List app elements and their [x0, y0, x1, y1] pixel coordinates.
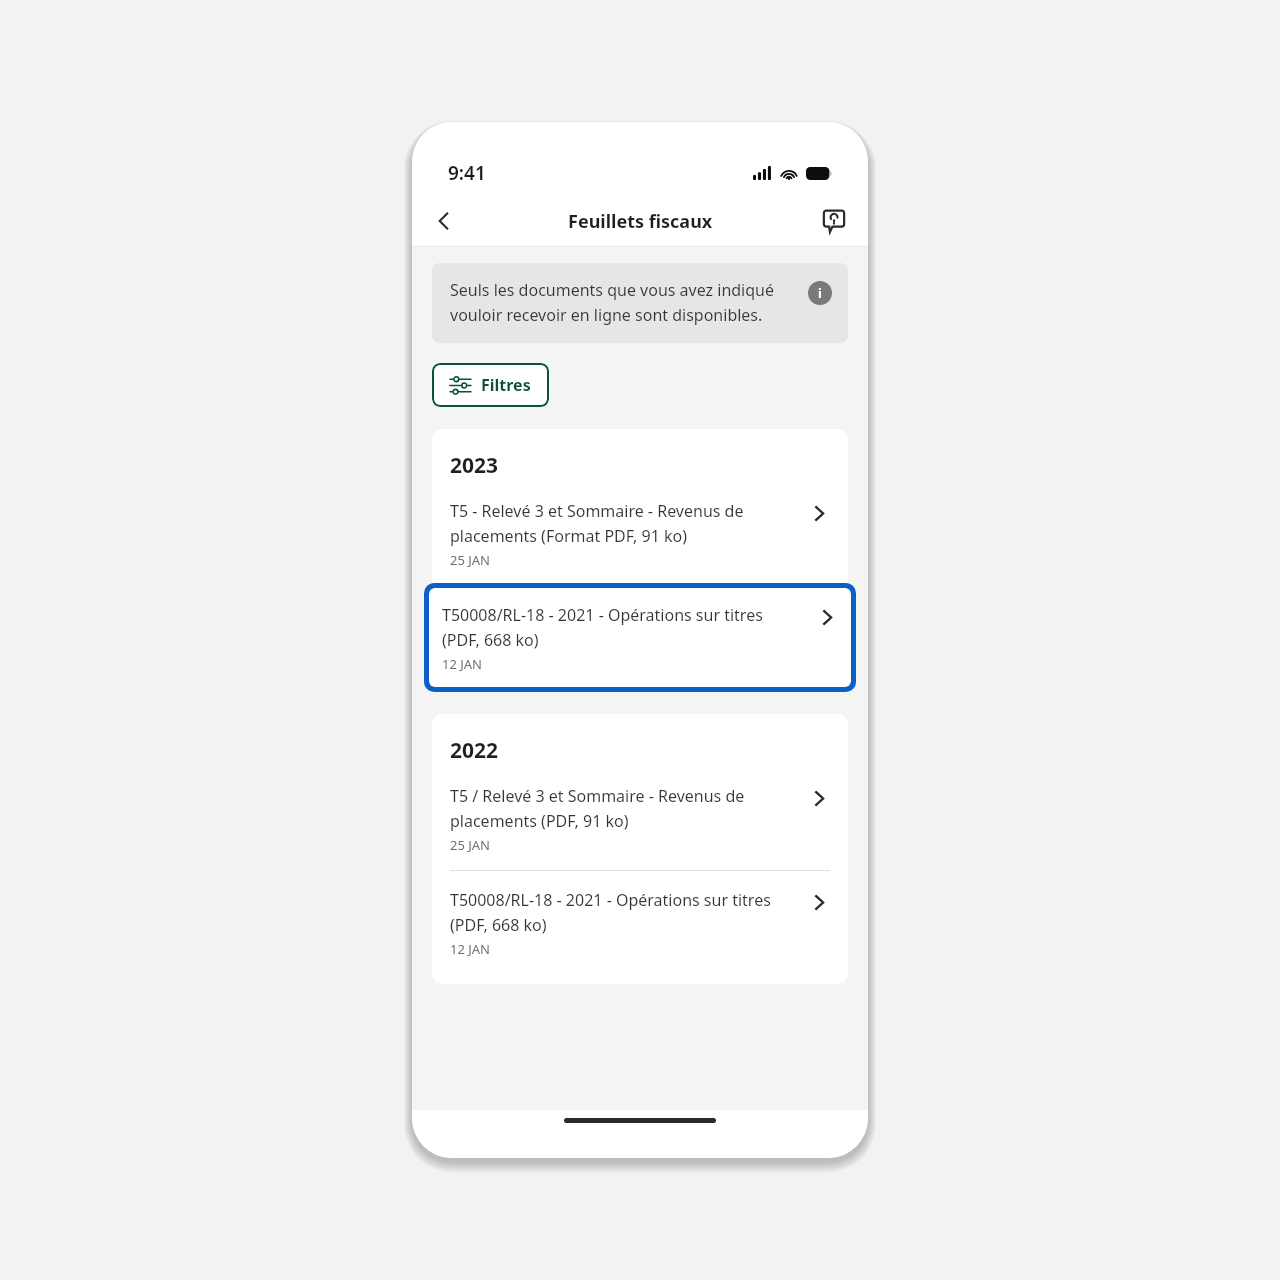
staticText: Seuls les documents que vous avez indiqu… — [450, 279, 798, 325]
button[interactable]: Retour — [422, 199, 466, 243]
staticText: 9:41 — [448, 160, 486, 186]
button[interactable]: T50008/RL-18 - 2021 - Opérations sur tit… — [424, 583, 856, 692]
staticText: 2023 — [450, 451, 499, 480]
staticText: 12 JAN — [450, 940, 490, 958]
button[interactable]: Aide — [812, 199, 856, 243]
staticText: T50008/RL-18 - 2021 - Opérations sur tit… — [442, 604, 804, 650]
button[interactable]: Seuls les documents que vous avez indiqu… — [432, 263, 848, 343]
staticText: 12 JAN — [442, 655, 482, 673]
staticText: T5 / Relevé 3 et Sommaire - Revenus de p… — [450, 785, 796, 831]
staticText: Filtres — [481, 374, 531, 396]
button[interactable]: T50008/RL-18 - 2021 - Opérations sur tit… — [432, 889, 848, 958]
staticText: T5 - Relevé 3 et Sommaire - Revenus de p… — [450, 500, 796, 546]
button[interactable]: T50008/RL-18 - 2021 - Opérations sur tit… — [429, 604, 851, 673]
button[interactable]: T5 / Relevé 3 et Sommaire - Revenus de p… — [432, 785, 848, 854]
staticText: T50008/RL-18 - 2021 - Opérations sur tit… — [450, 889, 796, 935]
staticText: Feuillets fiscaux — [568, 209, 713, 234]
button[interactable]: Filtres — [432, 363, 549, 407]
staticText: 25 JAN — [450, 551, 490, 569]
button[interactable]: T5 - Relevé 3 et Sommaire - Revenus de p… — [432, 500, 848, 569]
staticText: 2022 — [450, 736, 499, 765]
staticText: 25 JAN — [450, 836, 490, 854]
staticText: i — [818, 284, 822, 302]
